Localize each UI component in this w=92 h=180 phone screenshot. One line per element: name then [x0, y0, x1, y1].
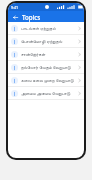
staticText: அமைய அமைய வேறுபாடு [21, 90, 76, 96]
button[interactable]: சான்றோர்கள் [8, 48, 84, 60]
button[interactable]: அமைய அமைய வேறுபாடு [8, 87, 84, 99]
button[interactable]: Back [10, 12, 20, 22]
button[interactable]: நல்லோர் வேதம் வேறுபாடு [8, 61, 84, 73]
staticText: 9:41 [11, 5, 19, 10]
staticText: சான்றோர்கள் [21, 52, 76, 56]
staticText: Topics [22, 13, 41, 21]
staticText: நல்லோர் வேதம் வேறுபாடு [21, 64, 76, 70]
button[interactable]: பாடல்கள் ஏற்றுதல் [8, 22, 84, 34]
button[interactable]: பொன்மொழி ஏற்றுதல் [8, 35, 84, 47]
staticText: பொன்மொழி ஏற்றுதல் [21, 38, 76, 44]
button[interactable]: சுவை சுவை முறை வேறுபாடு [8, 74, 84, 86]
staticText: பாடல்கள் ஏற்றுதல் [21, 25, 76, 31]
staticText: சுவை சுவை முறை வேறுபாடு [21, 77, 76, 83]
